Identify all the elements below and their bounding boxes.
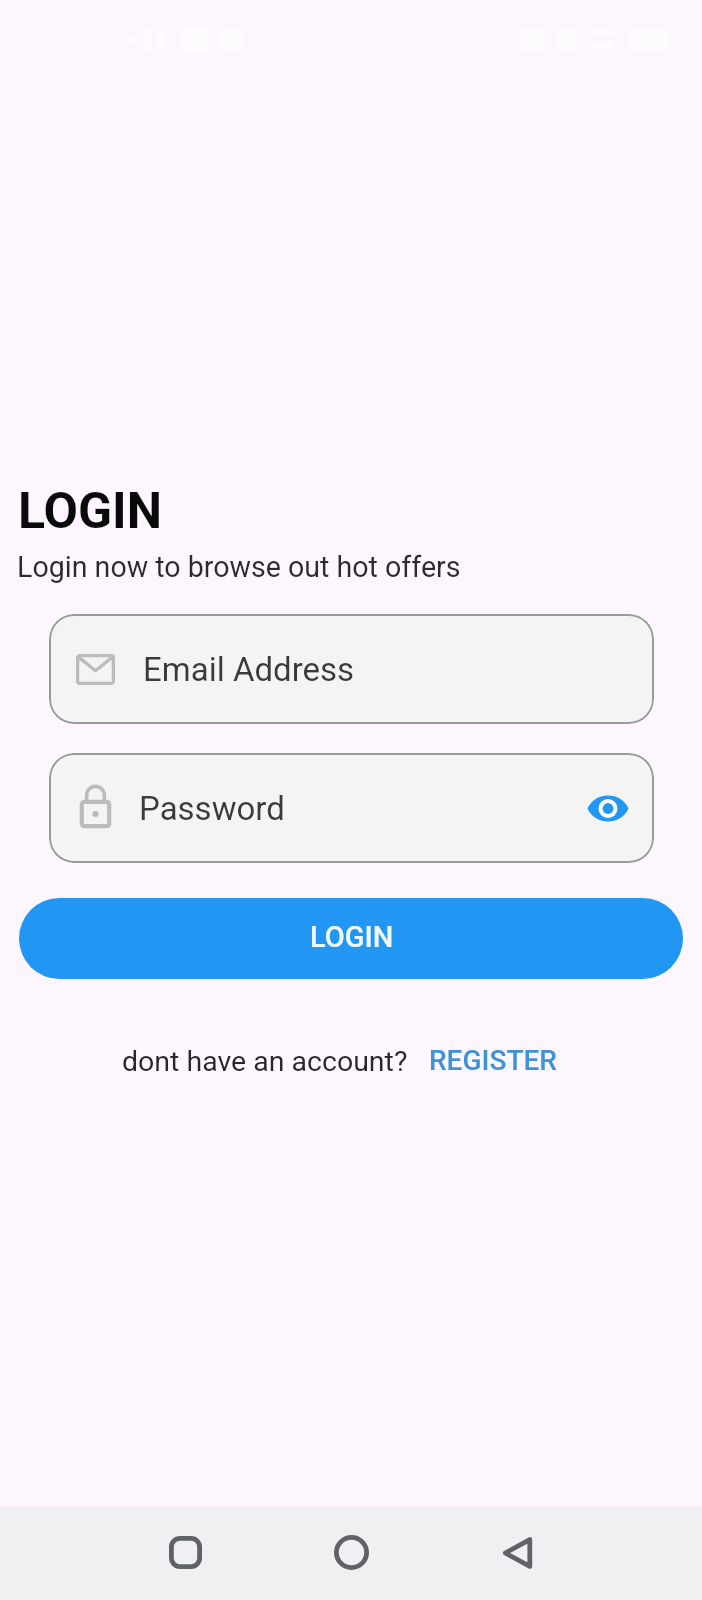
staticText: Email Address [143,650,355,689]
button[interactable]: Email Address [49,614,654,724]
staticText: LOGIN [310,920,394,954]
button[interactable]: Show password [575,775,641,841]
staticText: REGISTER [429,1044,557,1077]
button[interactable]: Password [49,753,654,863]
staticText: dont have an account? [122,1045,408,1078]
button[interactable]: REGISTER [415,1035,571,1086]
button[interactable]: Recents [150,1517,221,1588]
staticText: Login now to browse out hot offers [17,550,461,584]
button[interactable]: Back [482,1517,553,1588]
staticText: LOGIN [18,482,162,541]
staticText: Password [139,789,285,828]
button[interactable]: Home [316,1517,387,1588]
button[interactable]: LOGIN [19,898,683,979]
